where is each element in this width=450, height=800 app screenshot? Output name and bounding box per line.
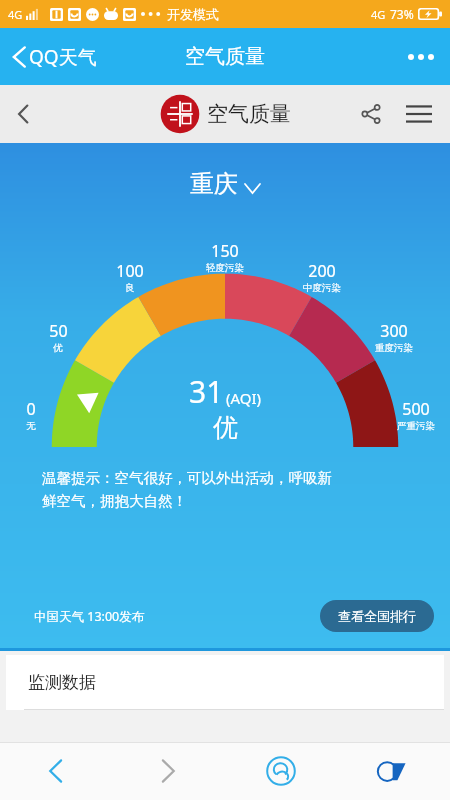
- staticText: 0: [26, 398, 36, 420]
- staticText: 开发模式: [167, 6, 219, 22]
- staticText: 4G: [371, 7, 386, 22]
- staticText: 100: [116, 260, 144, 282]
- button[interactable]: QQ: [224, 742, 337, 800]
- staticText: 无: [26, 420, 36, 432]
- staticText: QQ天气: [29, 44, 97, 70]
- staticText: 50: [49, 320, 68, 342]
- staticText: (AQI): [226, 388, 262, 408]
- button[interactable]: Share: [346, 89, 396, 139]
- staticText: 31: [189, 371, 224, 412]
- button[interactable]: Menu: [337, 742, 450, 800]
- staticText: 中国天气 13:00发布: [34, 608, 145, 625]
- button[interactable]: Back: [0, 742, 112, 800]
- staticText: 严重污染: [397, 420, 435, 432]
- staticText: 73%: [390, 6, 414, 22]
- button[interactable]: Menu: [396, 91, 450, 137]
- staticText: 优: [53, 342, 63, 354]
- staticText: 监测数据: [28, 672, 96, 693]
- staticText: 200: [308, 260, 336, 282]
- button[interactable]: More options: [392, 38, 450, 76]
- button[interactable]: Back: [0, 90, 47, 138]
- button[interactable]: 重庆: [180, 165, 270, 203]
- button[interactable]: QQ天气: [0, 38, 109, 76]
- button[interactable]: 查看全国排行: [320, 600, 434, 632]
- staticText: 轻度污染: [206, 262, 244, 274]
- staticText: 500: [402, 398, 430, 420]
- staticText: 150: [211, 240, 239, 262]
- staticText: 查看全国排行: [338, 608, 416, 624]
- staticText: 重庆: [190, 169, 238, 199]
- staticText: 重度污染: [375, 342, 413, 354]
- staticText: 空气质量: [207, 101, 291, 127]
- staticText: 4G: [8, 7, 23, 22]
- staticText: 300: [380, 320, 408, 342]
- button[interactable]: Forward: [112, 742, 224, 800]
- staticText: 中度污染: [303, 282, 341, 294]
- staticText: 空气质量: [185, 44, 265, 69]
- staticText: 温馨提示：空气很好，可以外出活动，呼吸新 鲜空气，拥抱大自然！: [42, 469, 332, 510]
- staticText: 优: [213, 412, 238, 443]
- staticText: 良: [125, 282, 135, 294]
